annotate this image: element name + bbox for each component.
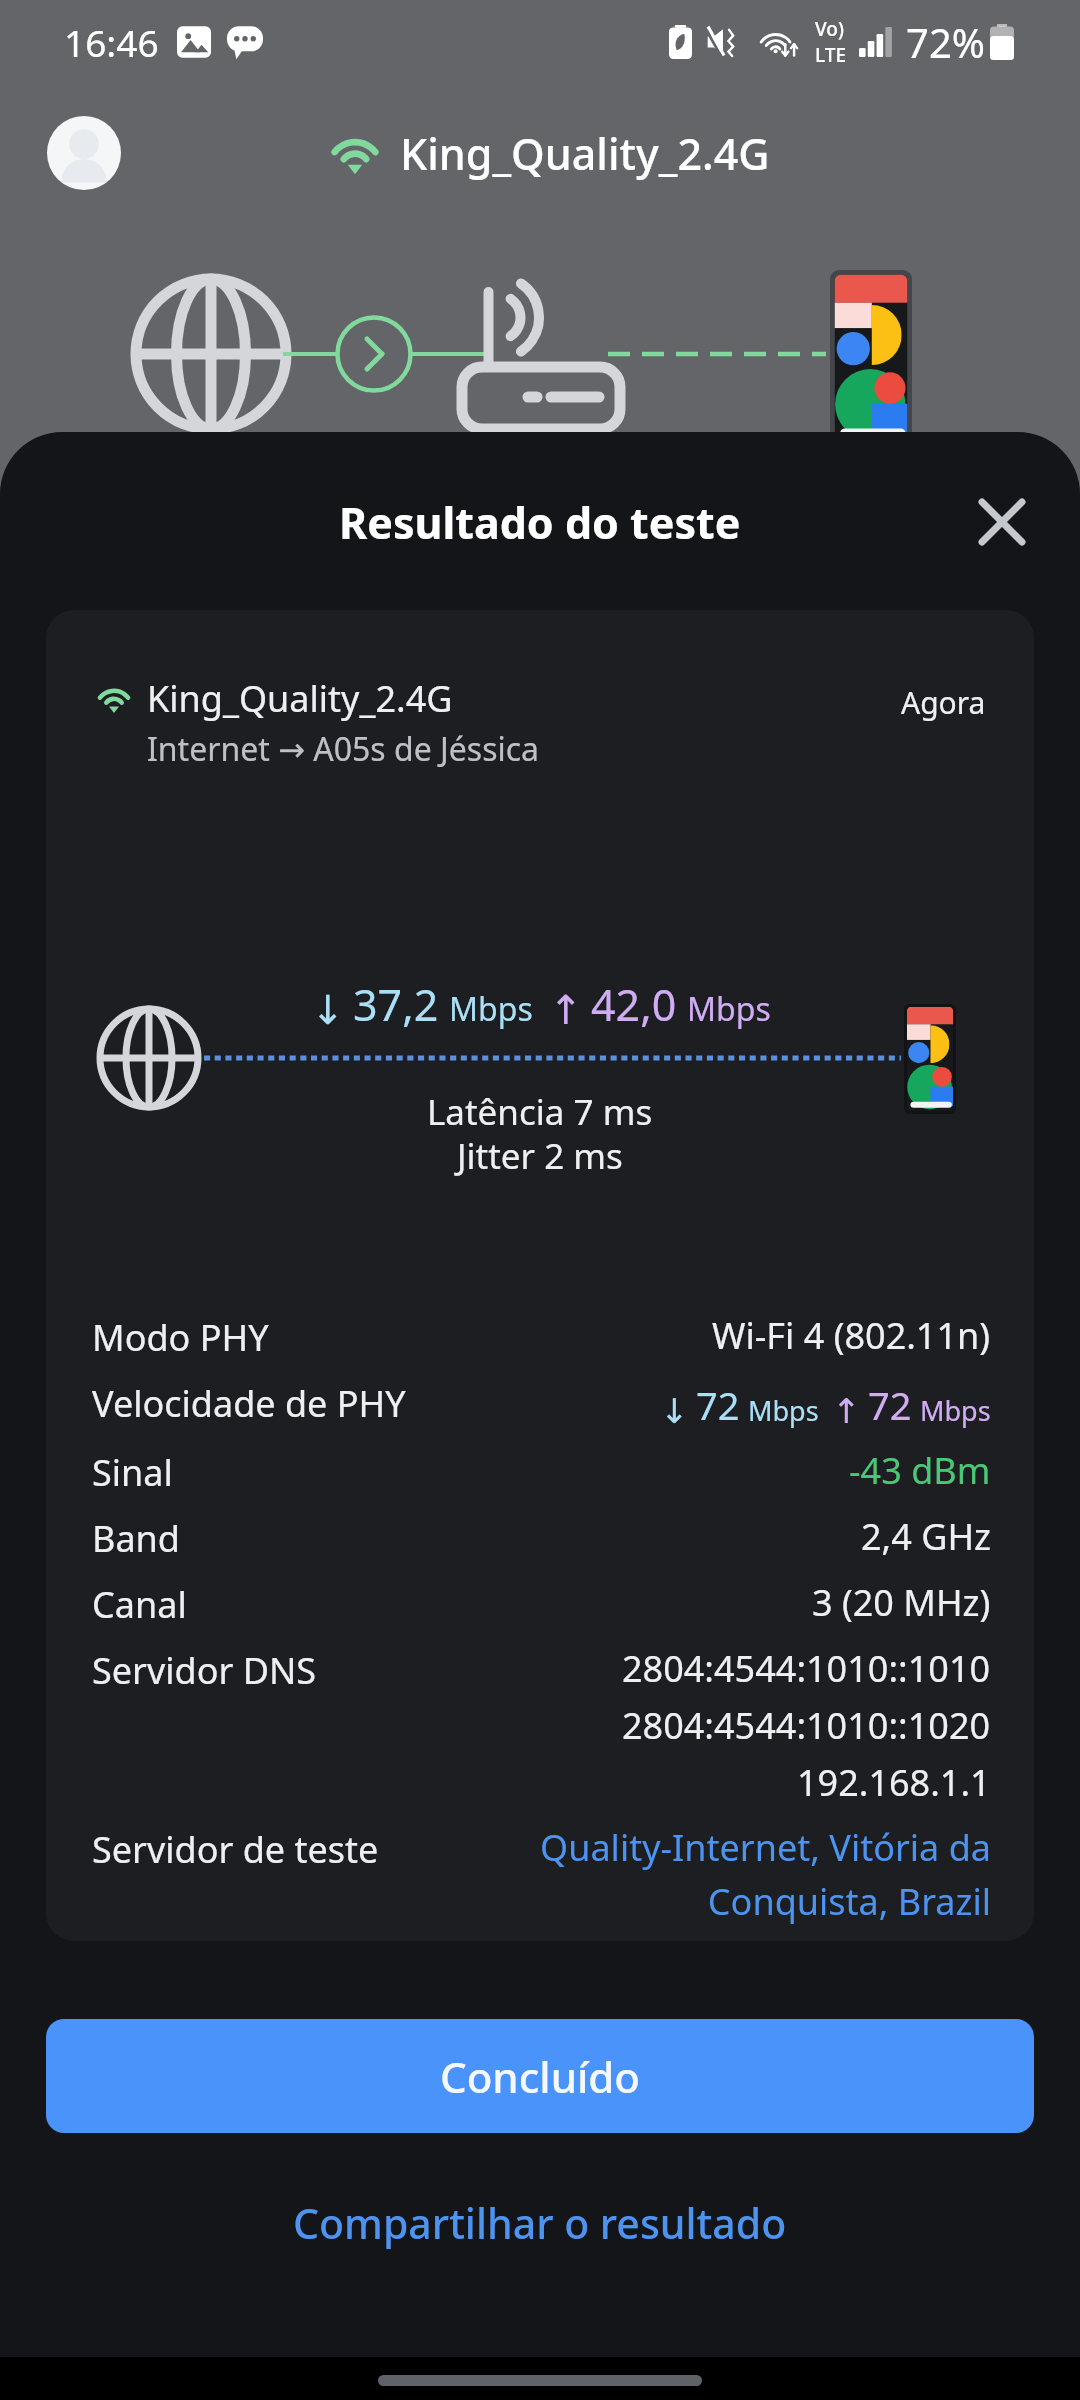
staticText: Velocidade de PHY bbox=[92, 1379, 406, 1428]
staticText: Resultado do teste bbox=[339, 493, 741, 552]
staticText: Wi-Fi 4 (802.11n) bbox=[712, 1311, 991, 1360]
staticText: Latência 7 ms bbox=[427, 1088, 653, 1136]
staticText: 72 bbox=[696, 1379, 740, 1431]
staticText: ↑ bbox=[832, 1391, 861, 1431]
staticText: Mbps bbox=[920, 1392, 991, 1429]
staticText: Modo PHY bbox=[92, 1313, 269, 1362]
staticText: Mbps bbox=[687, 987, 771, 1031]
staticText: King_Quality_2.4G bbox=[400, 124, 770, 183]
staticText: Agora bbox=[901, 682, 986, 723]
staticText: 192.168.1.1 bbox=[797, 1758, 991, 1807]
staticText: Servidor de teste bbox=[92, 1825, 379, 1874]
staticText: ↓ bbox=[311, 987, 345, 1034]
staticText: 2804:4544:1010::1020 bbox=[622, 1701, 991, 1750]
staticText: Servidor DNS bbox=[92, 1646, 317, 1695]
staticText: 3 (20 MHz) bbox=[812, 1578, 991, 1627]
staticText: ↑ bbox=[549, 987, 583, 1034]
staticText: 2,4 GHz bbox=[861, 1512, 991, 1561]
staticText: 42,0 bbox=[591, 975, 677, 1034]
staticText: Band bbox=[92, 1514, 180, 1563]
button[interactable]: Concluído bbox=[46, 2019, 1034, 2133]
staticText: 72 bbox=[868, 1379, 912, 1431]
staticText: 72% bbox=[906, 15, 985, 69]
staticText: Compartilhar o resultado bbox=[293, 2195, 787, 2251]
staticText: Concluído bbox=[440, 2048, 641, 2105]
staticText: King_Quality_2.4G bbox=[147, 674, 453, 723]
staticText: Mbps bbox=[748, 1392, 819, 1429]
button[interactable]: Close bbox=[962, 482, 1042, 562]
staticText: Canal bbox=[92, 1580, 187, 1629]
staticText: Mbps bbox=[449, 987, 533, 1031]
staticText: Internet → A05s de Jéssica bbox=[147, 727, 540, 771]
staticText: LTE bbox=[815, 42, 847, 68]
staticText: 2804:4544:1010::1010 bbox=[622, 1644, 991, 1693]
button[interactable]: Compartilhar o resultado bbox=[265, 2179, 815, 2267]
staticText: Vo) bbox=[815, 16, 844, 42]
staticText: ↓ bbox=[660, 1391, 689, 1431]
button[interactable]: Account bbox=[47, 116, 121, 190]
staticText: Sinal bbox=[92, 1448, 173, 1497]
staticText: Quality-Internet, Vitória da Conquista, … bbox=[539, 1823, 991, 1926]
staticText: -43 dBm bbox=[849, 1446, 991, 1495]
staticText: Jitter 2 ms bbox=[457, 1132, 623, 1180]
staticText: 37,2 bbox=[353, 975, 439, 1034]
staticText: 16:46 bbox=[64, 17, 159, 67]
